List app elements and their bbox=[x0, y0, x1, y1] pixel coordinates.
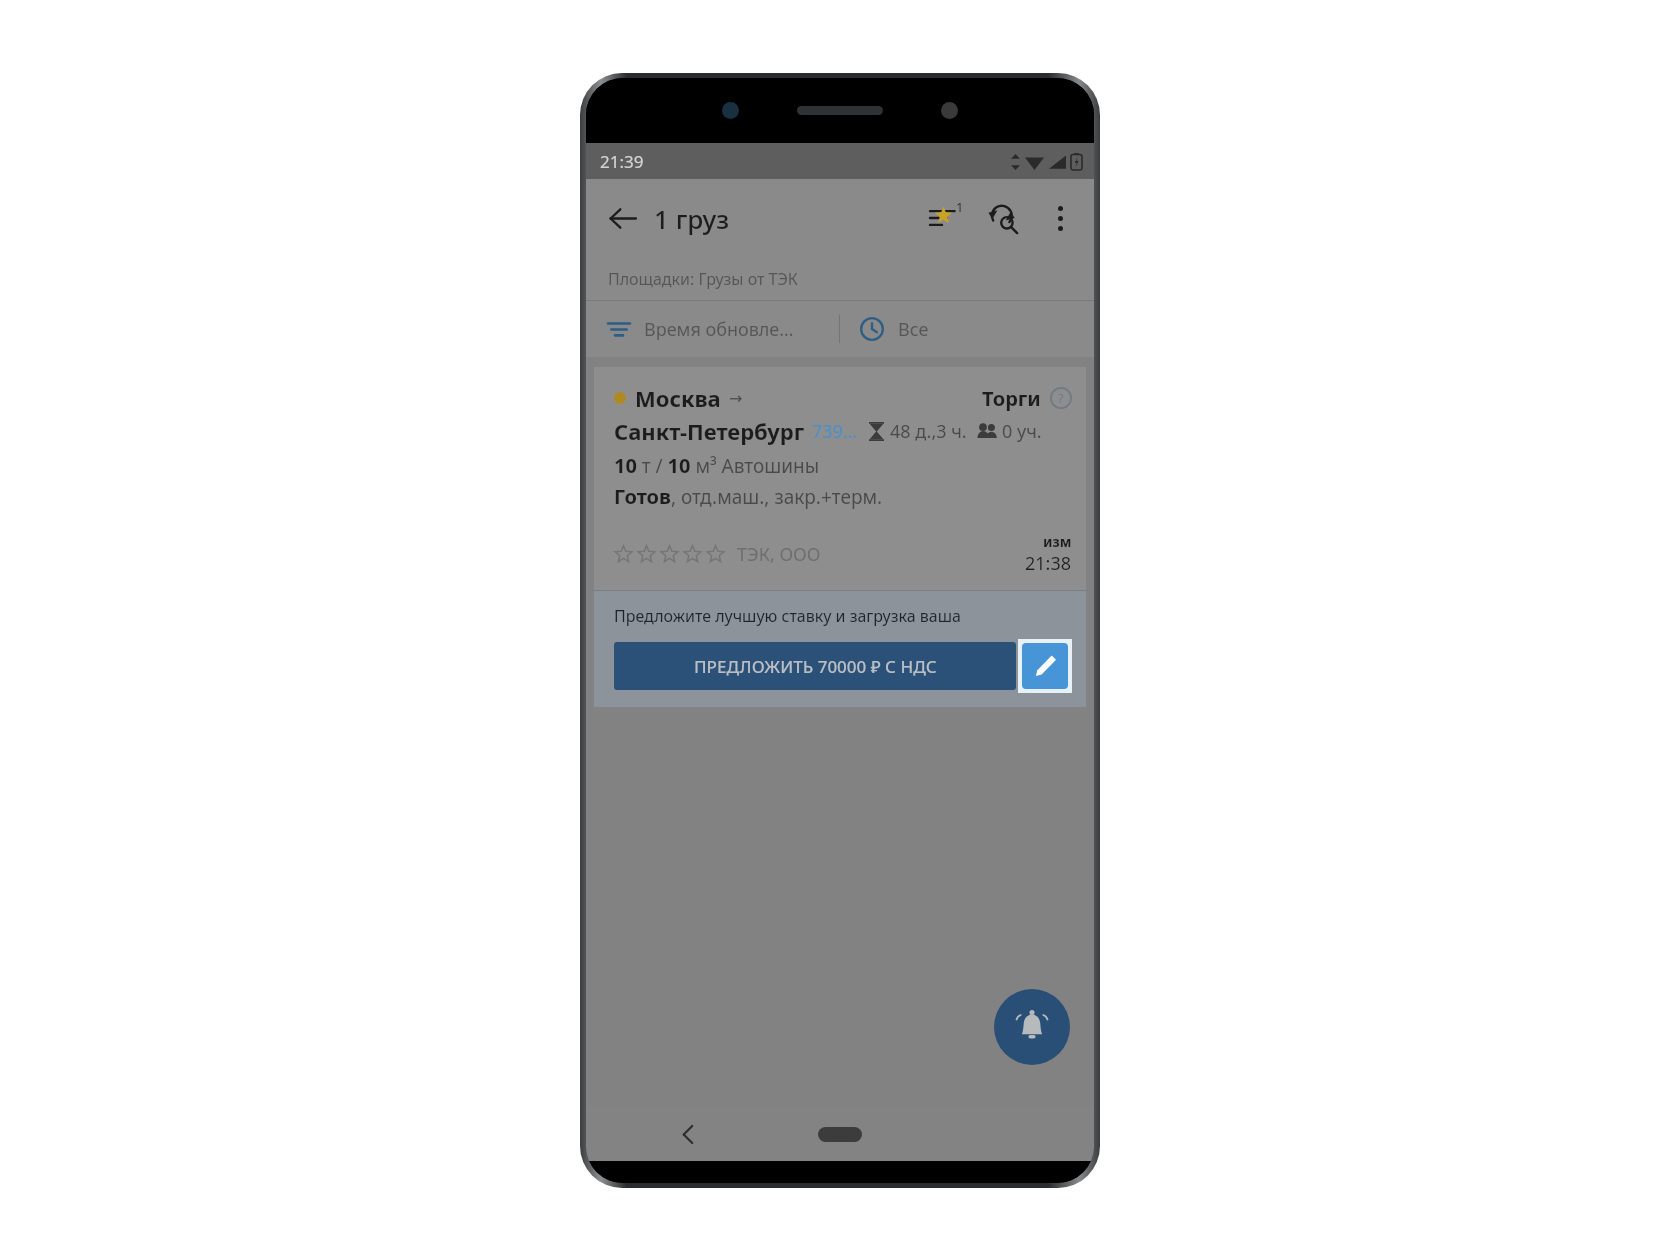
staticText: ? bbox=[1058, 389, 1064, 407]
button[interactable]: ПРЕДЛОЖИТЬ 70000 ₽ С НДС bbox=[614, 642, 1016, 690]
staticText: изм bbox=[1043, 532, 1072, 551]
button[interactable]: Back bbox=[666, 1112, 710, 1156]
button[interactable]: Москва bbox=[614, 383, 1072, 580]
button[interactable]: Back bbox=[586, 189, 644, 247]
staticText: 21:38 bbox=[1025, 551, 1072, 576]
button[interactable]: Все bbox=[840, 301, 1094, 357]
staticText: Предложите лучшую ставку и загрузка ваша bbox=[614, 605, 961, 627]
staticText: Площадки: Грузы от ТЭК bbox=[608, 268, 798, 290]
button[interactable]: Home bbox=[818, 1127, 862, 1142]
staticText: Готов, отд.маш., закр.+терм. bbox=[614, 483, 883, 510]
button[interactable]: Время обновле… bbox=[586, 301, 839, 357]
button[interactable]: Help about auction bbox=[1050, 387, 1072, 409]
button[interactable]: Refresh search bbox=[974, 189, 1032, 247]
button[interactable]: More options bbox=[1032, 190, 1088, 246]
staticText: Все bbox=[898, 317, 929, 342]
staticText: 21:39 bbox=[600, 150, 644, 173]
staticText: 1 bbox=[956, 198, 964, 216]
staticText: Санкт-Петербург bbox=[614, 416, 805, 446]
staticText: 48 д.,3 ч. bbox=[890, 419, 967, 444]
staticText: 10 т / 10 м³ Автошины bbox=[614, 452, 820, 479]
button[interactable]: Notifications bbox=[994, 989, 1070, 1065]
staticText: → bbox=[729, 389, 743, 408]
button[interactable]: Saved filters bbox=[916, 189, 974, 247]
staticText: ПРЕДЛОЖИТЬ 70000 ₽ С НДС bbox=[694, 655, 937, 678]
button[interactable]: Edit bid bbox=[1022, 643, 1068, 689]
staticText: ТЭК, ООО bbox=[737, 542, 821, 567]
staticText: Торги bbox=[982, 385, 1041, 412]
button[interactable]: Площадки: Грузы от ТЭК bbox=[586, 257, 1094, 301]
staticText: Москва bbox=[635, 383, 721, 413]
staticText: 739… bbox=[812, 419, 858, 444]
staticText: 1 груз bbox=[654, 201, 730, 236]
staticText: 0 уч. bbox=[1002, 419, 1042, 444]
staticText: Время обновле… bbox=[644, 317, 794, 342]
